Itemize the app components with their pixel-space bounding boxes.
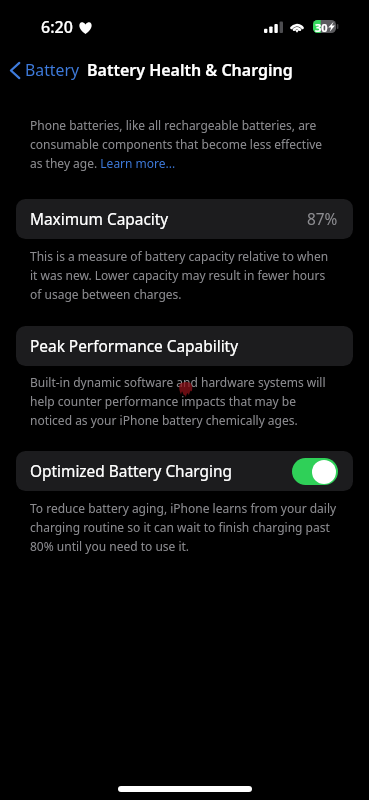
staticText: Battery Health & Charging [87, 59, 293, 81]
staticText: This is a measure of battery capacity re… [30, 248, 329, 302]
other: Cellular signal [264, 21, 282, 33]
button[interactable]: Maximum Capacity [16, 199, 353, 239]
staticText: Peak Performance Capability [30, 336, 239, 357]
staticText: 6:20 [41, 16, 73, 38]
staticText: 87% [307, 209, 338, 230]
staticText: Optimized Battery Charging [30, 461, 232, 482]
staticText: 30 [315, 20, 328, 33]
staticText: Maximum Capacity [30, 209, 169, 230]
staticText: Battery [25, 59, 80, 81]
other: Wi-Fi [289, 21, 305, 33]
button[interactable]: Peak Performance Capability [16, 326, 353, 366]
other: Battery 30 percent, charging [313, 20, 339, 34]
button[interactable]: Optimized Battery Charging [16, 451, 353, 491]
button[interactable]: Optimized Battery Charging [292, 458, 338, 485]
staticText: Built-in dynamic software and hardware s… [30, 374, 326, 428]
button[interactable]: Battery [5, 57, 84, 83]
staticText: To reduce battery aging, iPhone learns f… [30, 500, 337, 554]
staticText: Phone batteries, like all rechargeable b… [30, 117, 323, 171]
